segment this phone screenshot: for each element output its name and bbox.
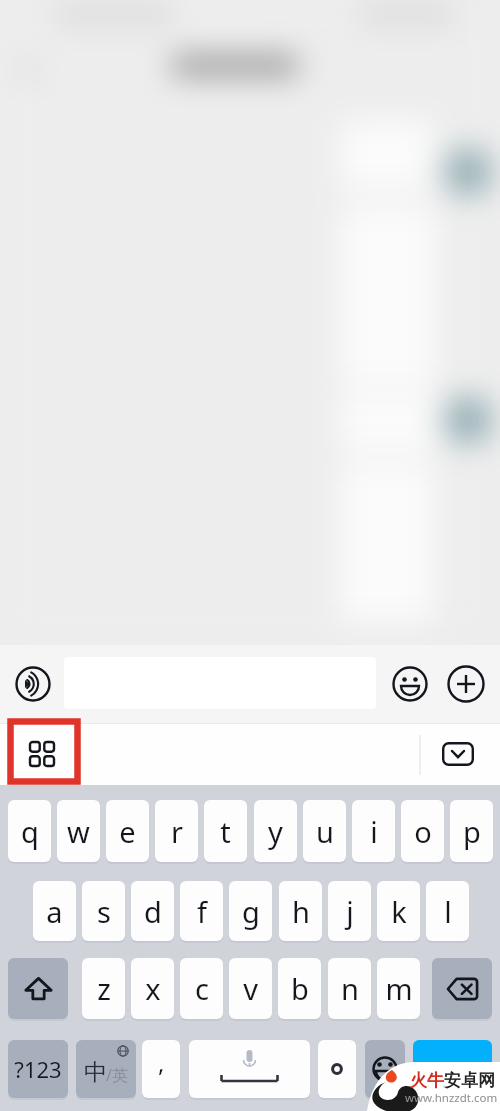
button[interactable]: b <box>278 958 321 1019</box>
button[interactable]: y <box>254 800 297 862</box>
button[interactable]: l <box>426 881 469 941</box>
staticText: x <box>145 969 161 1008</box>
staticText: u <box>316 812 334 851</box>
staticText: l <box>444 892 452 931</box>
button[interactable]: Space <box>189 1040 310 1098</box>
button[interactable]: More <box>439 658 493 710</box>
staticText: g <box>242 892 260 931</box>
button[interactable]: c <box>180 958 223 1019</box>
button[interactable]: d <box>131 881 174 941</box>
button[interactable]: p <box>450 800 493 862</box>
button[interactable]: Period <box>318 1040 356 1098</box>
button[interactable]: w <box>57 800 100 862</box>
staticText: a <box>46 892 63 931</box>
staticText: y <box>268 812 283 851</box>
staticText: m <box>385 969 413 1008</box>
button[interactable]: u <box>303 800 346 862</box>
button[interactable]: j <box>328 881 371 941</box>
button[interactable]: h <box>279 881 322 941</box>
staticText: c <box>195 969 209 1008</box>
staticText: w <box>67 812 90 851</box>
staticText: e <box>119 812 136 851</box>
button[interactable]: a <box>33 881 76 941</box>
staticText: i <box>370 812 378 851</box>
button[interactable]: i <box>352 800 395 862</box>
staticText: v <box>243 969 258 1008</box>
staticText: www.hnzzdt.com <box>405 1090 498 1106</box>
staticText: p <box>463 812 481 851</box>
staticText: /英 <box>106 1064 128 1086</box>
staticText: , <box>158 1046 165 1079</box>
button[interactable]: g <box>229 881 272 941</box>
button[interactable]: e <box>106 800 149 862</box>
button[interactable]: r <box>155 800 198 862</box>
button[interactable]: Voice input <box>6 658 60 710</box>
button[interactable]: x <box>131 958 174 1019</box>
button[interactable]: k <box>377 881 420 941</box>
button[interactable]: Emoji <box>383 658 437 710</box>
button[interactable]: Hide keyboard <box>428 723 488 785</box>
button[interactable]: n <box>328 958 371 1019</box>
staticText: r <box>171 812 183 851</box>
button[interactable]: z <box>82 958 125 1019</box>
button[interactable]: Backspace <box>432 958 492 1019</box>
staticText: n <box>341 969 359 1008</box>
button[interactable]: ?123 <box>8 1040 68 1098</box>
button[interactable]: t <box>204 800 247 862</box>
staticText: d <box>144 892 162 931</box>
staticText: t <box>220 812 231 851</box>
staticText: o <box>414 812 432 851</box>
staticText: b <box>291 969 309 1008</box>
staticText: 安卓网 <box>444 1070 495 1091</box>
button[interactable]: Send <box>413 1040 492 1098</box>
staticText: f <box>197 892 207 931</box>
staticText: q <box>21 812 39 851</box>
staticText: s <box>97 892 111 931</box>
staticText: 中 <box>84 1058 107 1087</box>
button[interactable]: s <box>82 881 125 941</box>
button[interactable]: v <box>229 958 272 1019</box>
button[interactable]: q <box>8 800 51 862</box>
button[interactable]: Shift <box>8 958 68 1019</box>
staticText: ?123 <box>14 1054 62 1084</box>
staticText: j <box>346 892 354 931</box>
button[interactable]: Emoji <box>365 1040 405 1098</box>
button[interactable]: Apps <box>8 723 76 785</box>
button[interactable]: m <box>377 958 420 1019</box>
button[interactable]: Language <box>76 1040 136 1098</box>
staticText: z <box>97 969 111 1008</box>
button[interactable]: f <box>180 881 223 941</box>
staticText: k <box>391 892 407 931</box>
staticText: h <box>292 892 310 931</box>
button[interactable]: o <box>401 800 444 862</box>
button[interactable]: , <box>142 1040 180 1098</box>
staticText: 火牛 <box>410 1070 444 1091</box>
